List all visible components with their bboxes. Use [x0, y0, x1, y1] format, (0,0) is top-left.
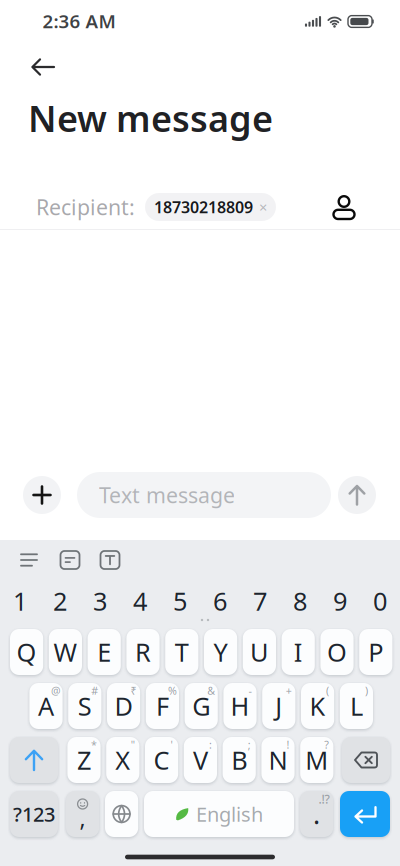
button[interactable]: W: [49, 629, 82, 675]
staticText: ?: [324, 737, 329, 752]
staticText: R: [135, 635, 151, 669]
staticText: J: [275, 689, 282, 723]
button[interactable]: English: [144, 791, 294, 837]
staticText: V: [193, 743, 208, 777]
button[interactable]: [93, 543, 127, 577]
button[interactable]: A: [29, 683, 63, 729]
button[interactable]: 7: [240, 586, 280, 616]
button[interactable]: S: [68, 683, 101, 729]
button[interactable]: V: [184, 737, 217, 783]
staticText: K: [310, 689, 326, 723]
staticText: 2: [53, 584, 67, 618]
staticText: New message: [28, 94, 273, 142]
staticText: X: [115, 743, 130, 777]
button[interactable]: F: [146, 683, 179, 729]
button[interactable]: [12, 543, 46, 577]
staticText: E: [97, 635, 111, 669]
button[interactable]: .: [300, 791, 333, 837]
staticText: 5: [173, 584, 187, 618]
staticText: 8: [293, 584, 307, 618]
button[interactable]: Y: [204, 629, 237, 675]
button[interactable]: D: [107, 683, 140, 729]
button[interactable]: [324, 189, 364, 225]
button[interactable]: ,: [66, 791, 99, 837]
button[interactable]: T: [165, 629, 198, 675]
button[interactable]: N: [261, 737, 295, 783]
staticText: H: [230, 689, 249, 723]
button[interactable]: G: [185, 683, 218, 729]
button[interactable]: [23, 49, 63, 85]
staticText: ,: [80, 803, 86, 833]
button[interactable]: H: [223, 683, 257, 729]
button[interactable]: Z: [67, 737, 101, 783]
button[interactable]: 0: [360, 586, 400, 616]
staticText: 9: [333, 584, 347, 618]
button[interactable]: [342, 737, 390, 783]
staticText: -: [248, 683, 251, 698]
staticText: Recipient:: [36, 193, 135, 221]
staticText: Z: [77, 743, 91, 777]
staticText: &: [207, 683, 215, 698]
button[interactable]: 5: [160, 586, 200, 616]
staticText: .!?: [318, 791, 329, 807]
staticText: ': [171, 737, 173, 752]
staticText: Text message: [99, 481, 235, 509]
button[interactable]: L: [340, 683, 373, 729]
button[interactable]: 8: [280, 586, 320, 616]
button[interactable]: 1: [0, 586, 40, 616]
button[interactable]: R: [126, 629, 160, 675]
staticText: .: [313, 796, 320, 832]
button[interactable]: [23, 476, 61, 514]
button[interactable]: [10, 737, 58, 783]
button[interactable]: J: [262, 683, 295, 729]
staticText: W: [53, 635, 77, 669]
button[interactable]: C: [145, 737, 178, 783]
staticText: T: [175, 635, 189, 669]
button[interactable]: ?123: [10, 791, 58, 837]
staticText: U: [250, 635, 269, 669]
staticText: A: [38, 689, 54, 723]
button[interactable]: K: [301, 683, 334, 729]
staticText: C: [154, 743, 170, 777]
staticText: I: [294, 635, 303, 669]
staticText: 0: [373, 584, 387, 618]
staticText: S: [78, 689, 92, 723]
button[interactable]: [105, 791, 138, 837]
staticText: 4: [133, 584, 147, 618]
staticText: 3: [93, 584, 107, 618]
staticText: Y: [214, 635, 228, 669]
staticText: D: [115, 689, 133, 723]
staticText: ": [131, 737, 135, 752]
button[interactable]: Q: [10, 629, 43, 675]
staticText: 2:36 AM: [42, 9, 115, 33]
staticText: F: [156, 689, 169, 723]
staticText: L: [350, 689, 363, 723]
button[interactable]: 3: [80, 586, 120, 616]
staticText: G: [192, 689, 210, 723]
button[interactable]: U: [243, 629, 276, 675]
button[interactable]: X: [106, 737, 139, 783]
button[interactable]: 9: [320, 586, 360, 616]
button[interactable]: 2: [40, 586, 80, 616]
button[interactable]: M: [300, 737, 333, 783]
button[interactable]: I: [282, 629, 315, 675]
button[interactable]: E: [88, 629, 121, 675]
button[interactable]: O: [320, 629, 354, 675]
staticText: ?123: [13, 801, 55, 827]
staticText: (: [326, 683, 329, 698]
staticText: ): [365, 683, 368, 698]
staticText: N: [268, 743, 287, 777]
button[interactable]: [53, 543, 87, 577]
button[interactable]: 18730218809: [145, 193, 276, 221]
button[interactable]: 4: [120, 586, 160, 616]
button[interactable]: B: [223, 737, 256, 783]
staticText: :: [209, 737, 212, 752]
button[interactable]: 6: [200, 586, 240, 616]
button[interactable]: Text message: [77, 472, 331, 518]
staticText: %: [168, 683, 177, 698]
staticText: Q: [17, 635, 37, 669]
button[interactable]: P: [359, 629, 392, 675]
staticText: O: [327, 635, 347, 669]
button[interactable]: [340, 791, 390, 837]
button[interactable]: [338, 476, 376, 514]
